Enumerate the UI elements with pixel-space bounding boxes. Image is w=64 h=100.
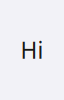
- staticText: Hi: [20, 35, 43, 65]
